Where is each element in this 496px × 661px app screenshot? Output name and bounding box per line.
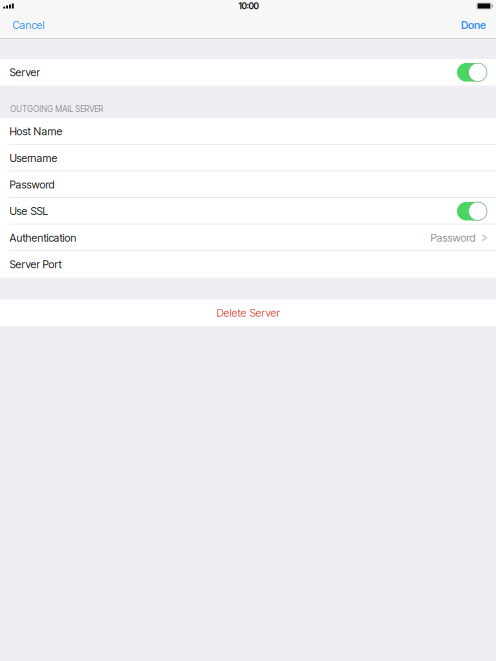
button[interactable]: Delete Server — [0, 299, 496, 326]
staticText: 10:00 — [238, 1, 258, 11]
button[interactable]: Username — [0, 145, 496, 171]
staticText: Authentication — [10, 231, 77, 244]
staticText: Cancel — [12, 18, 44, 31]
staticText: Password — [10, 178, 55, 191]
staticText: Host Name — [10, 125, 63, 138]
button[interactable]: Done — [453, 12, 496, 38]
button[interactable]: Host Name — [0, 118, 496, 145]
button[interactable]: Server Port — [0, 251, 496, 278]
button[interactable]: Use SSL — [0, 198, 496, 224]
staticText: Delete Server — [216, 306, 279, 319]
staticText: Use SSL — [10, 205, 49, 218]
button[interactable]: Password — [0, 171, 496, 198]
button[interactable]: Authentication — [0, 224, 496, 251]
staticText: Done — [461, 18, 486, 31]
staticText: Username — [10, 151, 58, 164]
button[interactable]: Cancel — [0, 12, 52, 38]
staticText: Password — [431, 231, 476, 244]
staticText: Server Port — [10, 258, 62, 271]
staticText: Server — [10, 66, 40, 79]
staticText: OUTGOING MAIL SERVER — [10, 104, 103, 114]
button[interactable]: Server — [0, 59, 496, 86]
